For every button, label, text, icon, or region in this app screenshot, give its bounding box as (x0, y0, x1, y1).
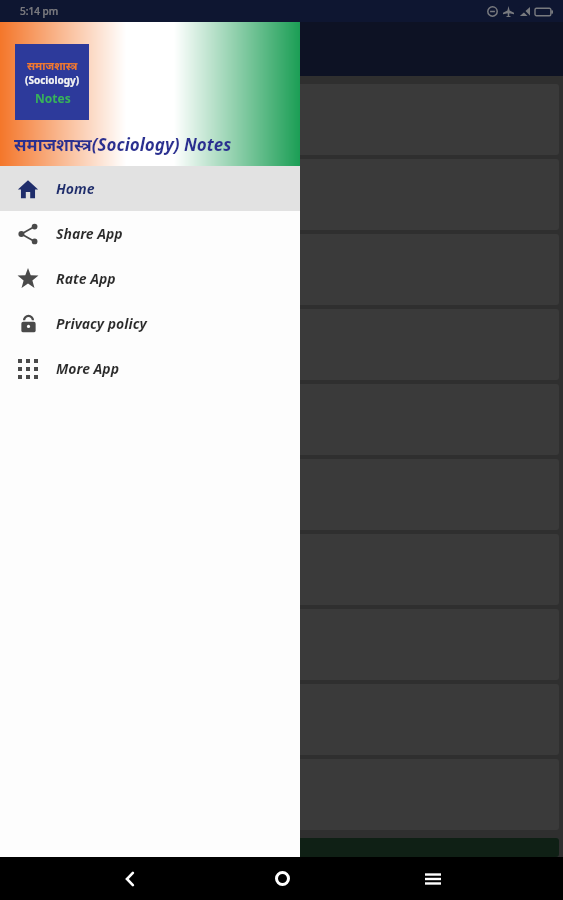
button[interactable]: Privacy policy (0, 301, 300, 346)
button[interactable]: General Knowledge (4, 838, 559, 857)
staticText: सामाजिक संरचना (26, 108, 135, 131)
staticText: Share App (56, 224, 123, 243)
staticText: Notes (35, 90, 71, 106)
staticText: समाजशास्त्र (27, 58, 78, 73)
staticText: समाजशास्त्र(Sociology) Notes (58, 38, 272, 61)
button[interactable]: Back (108, 857, 152, 900)
button[interactable] (4, 759, 559, 830)
staticText: Rate App (56, 269, 116, 288)
staticText: सामाजिक संस्थाएँ (26, 258, 134, 281)
staticText: (Sociology) (25, 73, 80, 87)
button[interactable] (4, 384, 559, 455)
button[interactable]: सामाजिक परिवर्तन (4, 159, 559, 230)
staticText: Home (56, 179, 95, 198)
staticText: सामाजिक परिवर्तन (26, 183, 141, 206)
button[interactable]: सामाजिक विकास(संरचनात्मक परिवर्तन) (4, 459, 559, 530)
button[interactable]: सामाजिक संरचना (4, 84, 559, 155)
button[interactable]: समाज का स्वरूप (4, 309, 559, 380)
button[interactable]: Rate App (0, 256, 300, 301)
button[interactable] (4, 534, 559, 605)
button[interactable]: Home (0, 166, 300, 211)
button[interactable]: More App (0, 346, 300, 391)
button[interactable]: सामाजिक संस्थाएँ (4, 234, 559, 305)
button[interactable]: Recent apps (411, 857, 455, 900)
button[interactable]: Home (260, 857, 304, 900)
staticText: More App (56, 359, 120, 378)
staticText: 5:14 pm (20, 4, 59, 18)
button[interactable] (4, 684, 559, 755)
button[interactable] (4, 609, 559, 680)
staticText: समाजशास्त्र(Sociology) Notes (14, 133, 232, 156)
staticText: Privacy policy (56, 314, 147, 333)
button[interactable]: Share App (0, 211, 300, 256)
